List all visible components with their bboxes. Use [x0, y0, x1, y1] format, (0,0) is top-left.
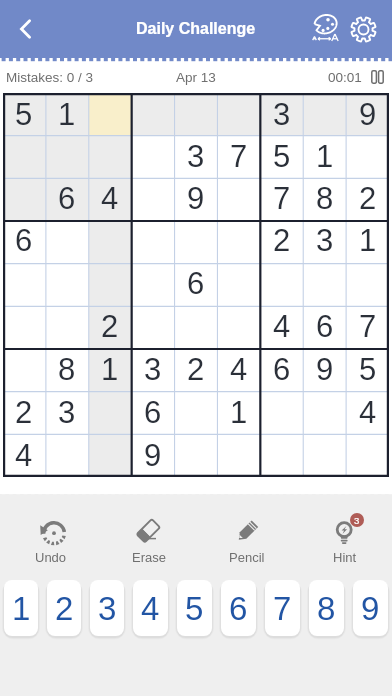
- button[interactable]: 1: [88, 348, 131, 391]
- button[interactable]: 4: [88, 177, 131, 219]
- button[interactable]: [45, 262, 88, 305]
- button[interactable]: [303, 434, 346, 477]
- button[interactable]: [131, 305, 174, 348]
- button[interactable]: [131, 262, 174, 305]
- button[interactable]: 1: [303, 135, 346, 177]
- button[interactable]: [217, 177, 260, 219]
- button[interactable]: 7: [260, 177, 303, 219]
- button[interactable]: 6: [131, 391, 174, 434]
- button[interactable]: 6: [303, 305, 346, 348]
- button[interactable]: 1: [346, 219, 389, 262]
- button[interactable]: [174, 305, 217, 348]
- button[interactable]: [45, 434, 88, 477]
- button[interactable]: 7: [265, 580, 300, 636]
- button[interactable]: 1: [4, 580, 38, 636]
- button[interactable]: [174, 219, 217, 262]
- button[interactable]: 7: [217, 135, 260, 177]
- button[interactable]: [88, 434, 131, 477]
- button[interactable]: [303, 93, 346, 135]
- button[interactable]: 2: [47, 580, 81, 636]
- button[interactable]: 4: [217, 348, 260, 391]
- button[interactable]: [303, 391, 346, 434]
- button[interactable]: Theme: [309, 0, 341, 58]
- button[interactable]: [131, 93, 174, 135]
- button[interactable]: 2: [88, 305, 131, 348]
- button[interactable]: [88, 135, 131, 177]
- button[interactable]: [260, 391, 303, 434]
- button[interactable]: Pause: [362, 62, 392, 92]
- button[interactable]: 2: [346, 177, 389, 219]
- button[interactable]: [131, 219, 174, 262]
- button[interactable]: [260, 434, 303, 477]
- button[interactable]: 4: [3, 434, 45, 477]
- button[interactable]: 2: [260, 219, 303, 262]
- button[interactable]: 5: [3, 93, 45, 135]
- button[interactable]: [217, 434, 260, 477]
- button[interactable]: [260, 262, 303, 305]
- staticText: Erase: [132, 550, 166, 565]
- button[interactable]: [88, 391, 131, 434]
- button[interactable]: 7: [346, 305, 389, 348]
- button[interactable]: [45, 219, 88, 262]
- button[interactable]: Erase: [100, 516, 198, 576]
- button[interactable]: 3: [174, 135, 217, 177]
- button[interactable]: [174, 434, 217, 477]
- button[interactable]: 2: [174, 348, 217, 391]
- button[interactable]: [3, 305, 45, 348]
- button[interactable]: 3: [45, 391, 88, 434]
- staticText: 3: [354, 515, 360, 526]
- button[interactable]: [346, 262, 389, 305]
- button[interactable]: 3: [296, 516, 392, 576]
- button[interactable]: Undo: [2, 516, 100, 576]
- button[interactable]: 1: [217, 391, 260, 434]
- button[interactable]: [45, 135, 88, 177]
- button[interactable]: 6: [3, 219, 45, 262]
- button[interactable]: 6: [174, 262, 217, 305]
- button[interactable]: 4: [346, 391, 389, 434]
- button[interactable]: 3: [131, 348, 174, 391]
- button[interactable]: 8: [45, 348, 88, 391]
- button[interactable]: [3, 135, 45, 177]
- button[interactable]: 8: [303, 177, 346, 219]
- button[interactable]: 6: [221, 580, 256, 636]
- button[interactable]: [217, 305, 260, 348]
- button[interactable]: 3: [260, 93, 303, 135]
- button[interactable]: 9: [353, 580, 388, 636]
- button[interactable]: [174, 391, 217, 434]
- button[interactable]: [88, 262, 131, 305]
- button[interactable]: 6: [45, 177, 88, 219]
- button[interactable]: Back: [4, 0, 48, 58]
- button[interactable]: 1: [45, 93, 88, 135]
- button[interactable]: 5: [260, 135, 303, 177]
- button[interactable]: 4: [133, 580, 168, 636]
- button[interactable]: [131, 177, 174, 219]
- button[interactable]: [346, 434, 389, 477]
- button[interactable]: [131, 135, 174, 177]
- button[interactable]: [3, 177, 45, 219]
- button[interactable]: [45, 305, 88, 348]
- button[interactable]: Settings: [347, 0, 379, 58]
- button[interactable]: 2: [3, 391, 45, 434]
- button[interactable]: Pencil: [198, 516, 296, 576]
- button[interactable]: 9: [174, 177, 217, 219]
- button[interactable]: 5: [346, 348, 389, 391]
- button[interactable]: 9: [303, 348, 346, 391]
- button[interactable]: 3: [303, 219, 346, 262]
- button[interactable]: [303, 262, 346, 305]
- button[interactable]: 3: [90, 580, 124, 636]
- button[interactable]: [3, 262, 45, 305]
- button[interactable]: [88, 93, 131, 135]
- button[interactable]: [217, 262, 260, 305]
- button[interactable]: [174, 93, 217, 135]
- button[interactable]: 9: [346, 93, 389, 135]
- button[interactable]: 5: [177, 580, 212, 636]
- button[interactable]: [217, 219, 260, 262]
- button[interactable]: [217, 93, 260, 135]
- button[interactable]: 6: [260, 348, 303, 391]
- button[interactable]: [346, 135, 389, 177]
- button[interactable]: 8: [309, 580, 344, 636]
- button[interactable]: 9: [131, 434, 174, 477]
- button[interactable]: 4: [260, 305, 303, 348]
- button[interactable]: [3, 348, 45, 391]
- button[interactable]: [88, 219, 131, 262]
